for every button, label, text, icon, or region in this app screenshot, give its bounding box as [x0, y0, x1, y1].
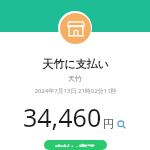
- staticText: 支払い完了: [55, 143, 96, 147]
- staticText: 天竹: [68, 74, 82, 83]
- staticText: 2024年7月13日 21時02分11秒: [34, 87, 117, 95]
- staticText: 円: [103, 117, 114, 131]
- staticText: 天竹に支払い: [42, 57, 109, 71]
- button[interactable]: Search: [116, 119, 127, 130]
- staticText: 34,460: [23, 100, 102, 134]
- button[interactable]: 支払い完了: [44, 140, 107, 150]
- button[interactable]: Store: [58, 11, 92, 45]
